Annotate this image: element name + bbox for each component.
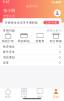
staticText: 立即开通	[45, 21, 57, 24]
button[interactable]: 消息	[32, 88, 48, 99]
button[interactable]: 立即开通	[43, 21, 59, 24]
staticText: 升级黄金会员享专属权益	[5, 21, 38, 24]
button[interactable]: 设置	[0, 60, 64, 65]
button[interactable]: Profile photo	[54, 9, 61, 16]
staticText: 账号安全	[3, 50, 15, 54]
button[interactable]: 积分商城	[48, 33, 64, 43]
staticText: 我的	[53, 95, 59, 99]
staticText: 会员中心	[26, 4, 38, 8]
button[interactable]: 优惠券	[32, 33, 48, 43]
button[interactable]: 我的订单	[0, 33, 16, 43]
button[interactable]: 消息通知	[0, 55, 64, 60]
staticText: 普通会员	[3, 14, 15, 18]
staticText: 分类	[21, 95, 27, 99]
button[interactable]: 账号安全	[0, 49, 64, 54]
staticText: 常用功能	[3, 29, 15, 32]
staticText: 我的订单	[2, 39, 14, 43]
button[interactable]: 收货地址	[0, 44, 64, 49]
staticText: 消息通知	[3, 56, 15, 59]
staticText: 消息	[37, 95, 43, 99]
staticText: 优惠券	[35, 39, 44, 43]
button[interactable]: 我的钱包	[16, 33, 32, 43]
button[interactable]: 查看全部	[47, 29, 61, 32]
button[interactable]: 我的	[48, 88, 64, 99]
staticText: 我的钱包	[18, 39, 30, 43]
button[interactable]: 首页	[0, 88, 16, 99]
staticText: 张小明	[3, 8, 15, 13]
staticText: 积分商城	[50, 39, 62, 43]
staticText: 设置	[3, 61, 9, 64]
button[interactable]: 分类	[16, 88, 32, 99]
staticText: 9:41	[3, 0, 10, 4]
staticText: 查看全部	[47, 29, 59, 32]
staticText: 首页	[5, 95, 11, 99]
staticText: 收货地址	[3, 45, 15, 48]
